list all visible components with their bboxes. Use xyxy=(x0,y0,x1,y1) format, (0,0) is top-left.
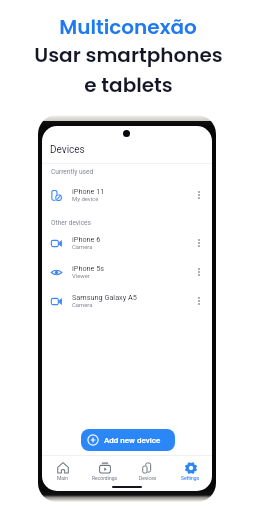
button[interactable]: iPhone 11 xyxy=(42,183,212,207)
staticText: Samsung Galaxy A5 xyxy=(72,293,137,302)
button[interactable]: Settings xyxy=(169,459,212,481)
staticText: Main xyxy=(57,475,69,481)
staticText: iPhone 5s xyxy=(72,264,105,273)
button[interactable]: iPhone 6 xyxy=(42,231,212,255)
staticText: Multiconexão xyxy=(59,13,197,41)
staticText: Currently used xyxy=(51,168,94,176)
staticText: Viewer xyxy=(72,273,90,280)
staticText: Add new device xyxy=(104,436,161,445)
staticText: Other devices xyxy=(51,219,92,227)
staticText: Devices xyxy=(139,475,157,481)
staticText: Recordings xyxy=(92,475,118,481)
staticText: Camera xyxy=(72,302,93,309)
staticText: Devices xyxy=(50,144,85,156)
button[interactable]: Samsung Galaxy A5 xyxy=(42,289,212,313)
button[interactable]: Recordings xyxy=(84,459,126,481)
button[interactable]: Devices xyxy=(126,459,169,481)
button[interactable]: Main xyxy=(42,459,84,481)
staticText: My device xyxy=(72,196,99,203)
button[interactable]: Add new device xyxy=(81,429,175,451)
button[interactable]: iPhone 5s xyxy=(42,260,212,284)
staticText: iPhone 11 xyxy=(72,187,105,196)
staticText: Camera xyxy=(72,244,93,251)
staticText: Usar smartphones e tablets xyxy=(34,41,223,99)
staticText: iPhone 6 xyxy=(72,235,101,244)
staticText: Settings xyxy=(181,475,200,481)
